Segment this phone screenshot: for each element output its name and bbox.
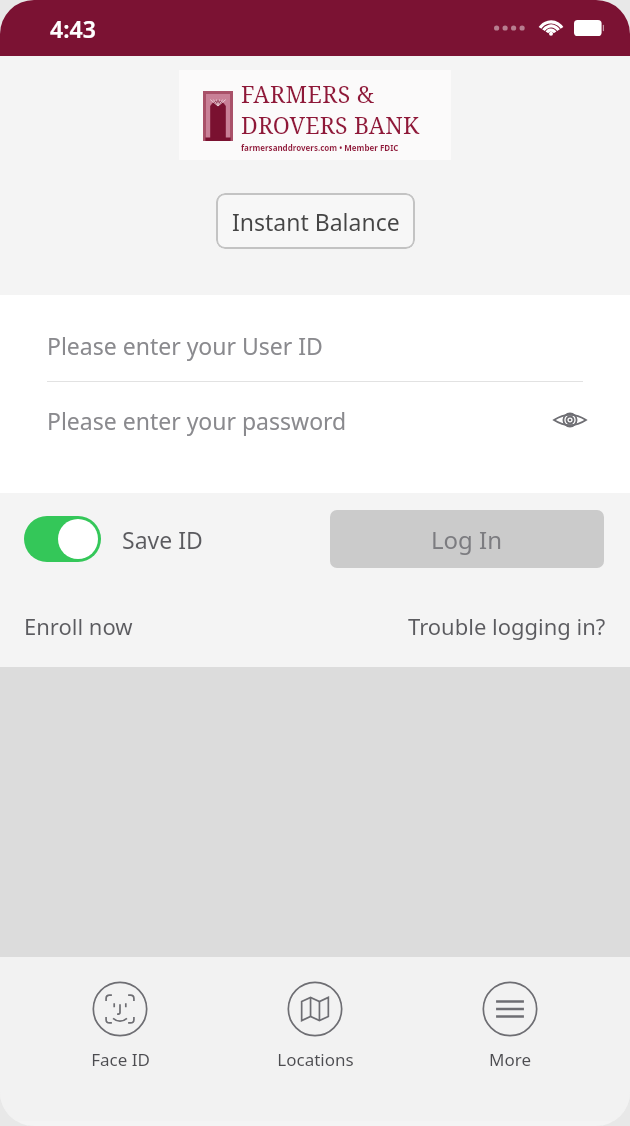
staticText: Instant Balance [232, 206, 400, 237]
other: Locations [286, 980, 344, 1038]
staticText: Face ID [91, 1048, 150, 1071]
button[interactable]: Log In [330, 510, 604, 568]
other: Face ID [91, 980, 149, 1038]
button[interactable]: Show password [548, 398, 592, 442]
button[interactable]: Locations [240, 957, 390, 1071]
staticText: Locations [277, 1048, 354, 1071]
other: More [481, 980, 539, 1038]
staticText: Save ID [122, 524, 203, 555]
staticText: farmersanddrovers.com • Member FDIC [241, 142, 399, 153]
staticText: DROVERS BANK [241, 109, 420, 140]
staticText: More [489, 1048, 531, 1071]
button[interactable]: Please enter your password [0, 382, 630, 458]
staticText: Log In [431, 523, 503, 556]
button[interactable]: Save ID [24, 516, 203, 562]
staticText: Trouble logging in? [408, 611, 606, 641]
button[interactable]: More [435, 957, 585, 1071]
staticText: Please enter your password [47, 405, 347, 436]
button[interactable]: Instant Balance [216, 193, 415, 249]
staticText: Please enter your User ID [47, 330, 323, 361]
button[interactable]: Trouble logging in? [406, 603, 608, 649]
staticText: 4:43 [50, 13, 96, 44]
staticText: Enroll now [24, 611, 133, 641]
button[interactable]: Please enter your User ID [0, 309, 630, 381]
button[interactable]: Face ID [45, 957, 195, 1071]
staticText: FARMERS & [241, 78, 375, 109]
button[interactable]: Enroll now [22, 603, 135, 649]
